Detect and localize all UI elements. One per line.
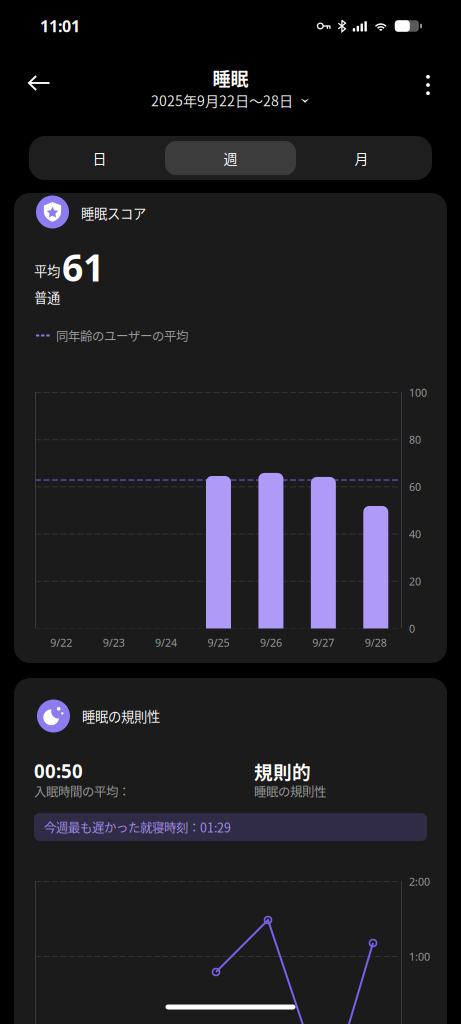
staticText: 9/25 [207, 635, 229, 650]
button[interactable]: Back [16, 61, 62, 105]
staticText: 60 [409, 480, 421, 494]
staticText: 2025年9月22日〜28日 [151, 90, 293, 110]
staticText: 普通 [34, 287, 60, 307]
button[interactable]: More options [408, 63, 448, 107]
staticText: 9/27 [312, 635, 334, 650]
button[interactable]: 月 [296, 141, 427, 175]
staticText: 9/26 [260, 635, 282, 650]
staticText: 100 [409, 385, 427, 400]
staticText: 今週最も遅かった就寝時刻：01:29 [44, 818, 231, 836]
staticText: 80 [409, 433, 421, 447]
button[interactable]: 日 [34, 141, 165, 175]
staticText: 2:00 [409, 874, 430, 889]
staticText: 20 [409, 574, 421, 588]
staticText: 規則的 [254, 757, 311, 784]
staticText: 9/24 [155, 635, 177, 650]
staticText: 睡眠スコア [81, 203, 146, 223]
staticText: 1:00 [409, 949, 430, 964]
staticText: 入眠時間の平均： [34, 782, 130, 800]
staticText: 日 [92, 148, 106, 168]
staticText: 9/23 [103, 635, 125, 650]
button[interactable]: 2025年9月22日〜28日 [145, 85, 316, 115]
staticText: 月 [354, 148, 368, 168]
button[interactable]: 週 [165, 141, 296, 175]
staticText: 9/28 [365, 635, 387, 650]
staticText: 睡眠の規則性 [254, 782, 326, 800]
staticText: 平均 [34, 261, 60, 280]
staticText: 61 [62, 242, 104, 292]
staticText: 睡眠の規則性 [82, 706, 160, 726]
staticText: 9/22 [50, 635, 72, 650]
staticText: 40 [409, 527, 421, 541]
staticText: 睡眠 [212, 65, 248, 91]
staticText: 0 [409, 621, 415, 636]
staticText: 同年齢のユーザーの平均 [56, 326, 188, 344]
staticText: 00:50 [34, 759, 83, 783]
staticText: 11:01 [40, 15, 80, 37]
staticText: 週 [223, 148, 237, 168]
